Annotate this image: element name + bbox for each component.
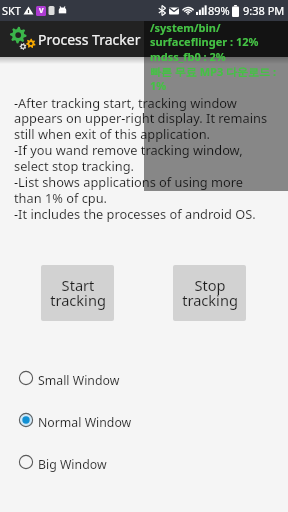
staticText: V (39, 6, 44, 16)
staticText: -After tracking start, tracking window a… (14, 94, 269, 223)
staticText: Small Window (38, 372, 120, 389)
staticText: Process Tracker (38, 30, 141, 49)
button[interactable]: Stop tracking (173, 265, 246, 321)
staticText: 9:38 PM (243, 3, 285, 18)
staticText: Normal Window (38, 414, 132, 431)
staticText: Start tracking (50, 275, 106, 311)
staticText: /system/bin/surfaceflinger : 12% (150, 20, 288, 49)
staticText: Big Window (38, 456, 107, 473)
button[interactable]: Normal Window (0, 399, 288, 441)
staticText: 89% (208, 3, 230, 18)
staticText: mdss_fb0 : 2% (150, 49, 226, 64)
button[interactable]: Small Window (0, 357, 288, 399)
staticText: SKT (2, 3, 21, 18)
button[interactable]: Big Window (0, 441, 288, 483)
staticText: Stop tracking (182, 275, 238, 311)
staticText: 빠른 무료 MP3 다운로드 : 1% (150, 64, 288, 93)
button[interactable]: Start tracking (41, 265, 114, 321)
